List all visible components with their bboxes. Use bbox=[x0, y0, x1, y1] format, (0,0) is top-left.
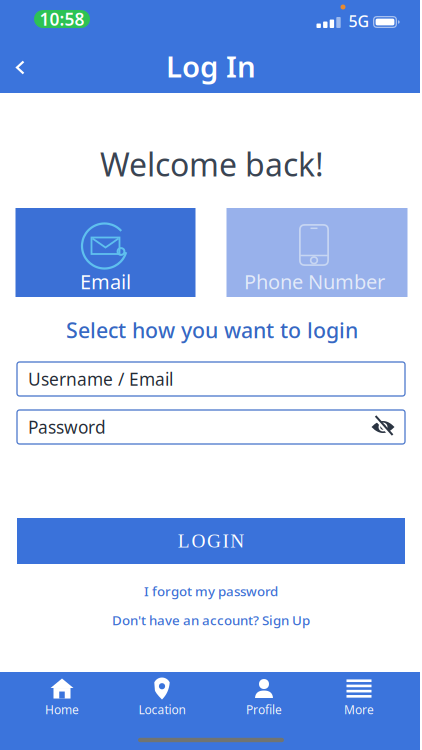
staticText: More bbox=[344, 701, 374, 717]
button[interactable]: Location bbox=[120, 675, 204, 721]
button[interactable]: Back bbox=[3, 50, 37, 84]
staticText: Location bbox=[138, 701, 185, 717]
staticText: Phone Number bbox=[244, 268, 385, 295]
staticText: Password bbox=[28, 415, 106, 438]
button[interactable]: Don't have an account? Sign Up bbox=[108, 607, 314, 633]
staticText: LOGIN bbox=[178, 530, 244, 552]
staticText: Email bbox=[80, 268, 131, 295]
staticText: Select how you want to login bbox=[66, 316, 358, 344]
staticText: Welcome back! bbox=[100, 143, 324, 185]
button[interactable]: I forgot my password bbox=[140, 578, 282, 604]
staticText: 10:58 bbox=[39, 7, 84, 30]
button[interactable]: Home bbox=[20, 675, 104, 721]
staticText: Don't have an account? Sign Up bbox=[112, 611, 310, 629]
staticText: I forgot my password bbox=[144, 582, 278, 600]
staticText: Log In bbox=[166, 46, 256, 85]
button[interactable]: Phone Number bbox=[226, 208, 407, 297]
staticText: Profile bbox=[246, 701, 282, 717]
staticText: Home bbox=[45, 701, 79, 717]
button[interactable]: More bbox=[317, 675, 401, 721]
button[interactable]: Profile bbox=[222, 675, 306, 721]
button[interactable]: Show password bbox=[368, 414, 398, 440]
staticText: Username / Email bbox=[28, 367, 173, 390]
button[interactable]: LOGIN bbox=[17, 518, 405, 564]
button[interactable]: Email bbox=[15, 208, 195, 297]
staticText: 5G bbox=[348, 10, 369, 32]
